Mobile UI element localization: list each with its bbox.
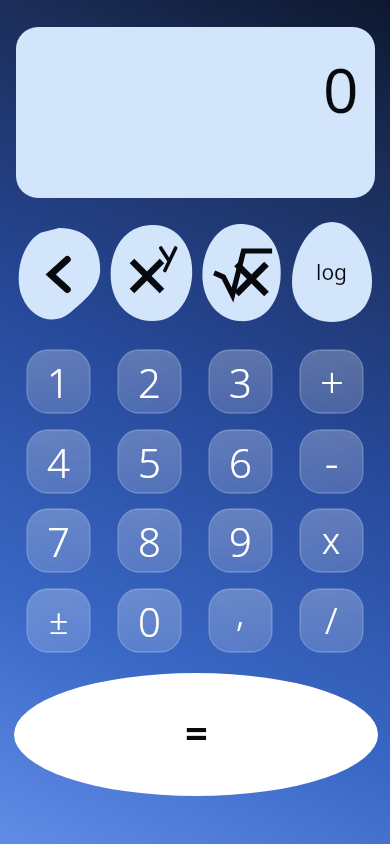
staticText: 0 bbox=[138, 594, 161, 648]
staticText: 0 bbox=[323, 47, 359, 131]
staticText: / bbox=[325, 596, 338, 645]
button[interactable]: 2 bbox=[118, 350, 181, 413]
staticText: 1 bbox=[47, 355, 70, 409]
button[interactable]: x bbox=[300, 509, 363, 572]
button[interactable]: 9 bbox=[209, 509, 272, 572]
staticText: log bbox=[316, 258, 348, 287]
button[interactable]: Backspace bbox=[17, 228, 101, 321]
button[interactable]: 5 bbox=[118, 430, 181, 493]
staticText: 5 bbox=[138, 435, 161, 489]
button[interactable]: / bbox=[300, 589, 363, 652]
button[interactable]: log bbox=[292, 222, 372, 322]
staticText: , bbox=[236, 588, 245, 637]
button[interactable]: 3 bbox=[209, 350, 272, 413]
button[interactable]: 0 bbox=[16, 27, 375, 198]
staticText: ± bbox=[49, 598, 69, 644]
staticText: + bbox=[320, 353, 344, 410]
button[interactable]: 6 bbox=[209, 430, 272, 493]
button[interactable]: x to the power of y bbox=[109, 224, 193, 322]
button[interactable]: 4 bbox=[27, 430, 90, 493]
button[interactable]: 0 bbox=[118, 589, 181, 652]
button[interactable]: , bbox=[209, 589, 272, 652]
button[interactable]: - bbox=[300, 430, 363, 493]
staticText: x bbox=[322, 516, 341, 565]
staticText: 2 bbox=[138, 355, 161, 409]
button[interactable]: + bbox=[300, 350, 363, 413]
button[interactable]: 8 bbox=[118, 509, 181, 572]
staticText: 6 bbox=[229, 435, 252, 489]
staticText: 8 bbox=[138, 514, 161, 568]
button[interactable]: 7 bbox=[27, 509, 90, 572]
button[interactable]: = bbox=[14, 673, 378, 796]
staticText: = bbox=[185, 705, 208, 759]
staticText: - bbox=[325, 433, 339, 490]
button[interactable]: Square root of x bbox=[200, 224, 283, 322]
staticText: 3 bbox=[229, 355, 252, 409]
staticText: 9 bbox=[229, 514, 252, 568]
staticText: 7 bbox=[47, 514, 70, 568]
button[interactable]: 1 bbox=[27, 350, 90, 413]
staticText: 4 bbox=[47, 435, 70, 489]
button[interactable]: ± bbox=[27, 589, 90, 652]
